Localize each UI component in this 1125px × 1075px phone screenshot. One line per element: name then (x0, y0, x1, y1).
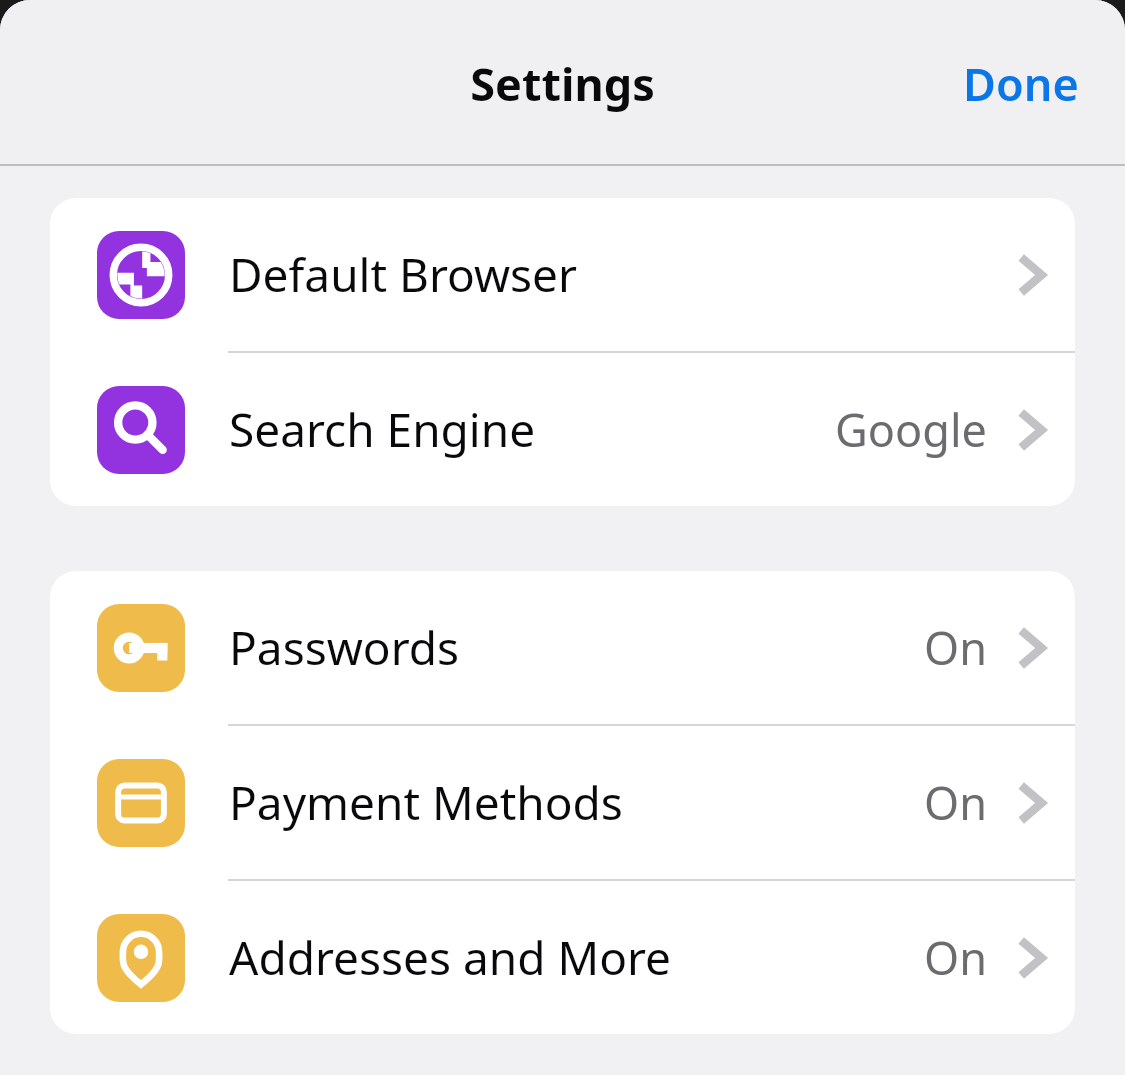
button[interactable]: Addresses and More (50, 881, 1075, 1034)
staticText: On (924, 772, 987, 833)
staticText: Payment Methods (229, 771, 623, 834)
button[interactable]: Done (947, 43, 1095, 124)
staticText: Google (835, 399, 987, 460)
staticText: Default Browser (229, 243, 578, 306)
button[interactable]: Default Browser (50, 198, 1075, 351)
button[interactable]: Search Engine (50, 353, 1075, 506)
staticText: Search Engine (229, 398, 536, 461)
staticText: Addresses and More (229, 926, 672, 989)
staticText: Settings (0, 53, 1125, 114)
staticText: On (924, 927, 987, 988)
staticText: Passwords (229, 616, 460, 679)
staticText: Done (963, 53, 1079, 114)
staticText: On (924, 617, 987, 678)
button[interactable]: Payment Methods (50, 726, 1075, 879)
button[interactable]: Passwords (50, 571, 1075, 724)
